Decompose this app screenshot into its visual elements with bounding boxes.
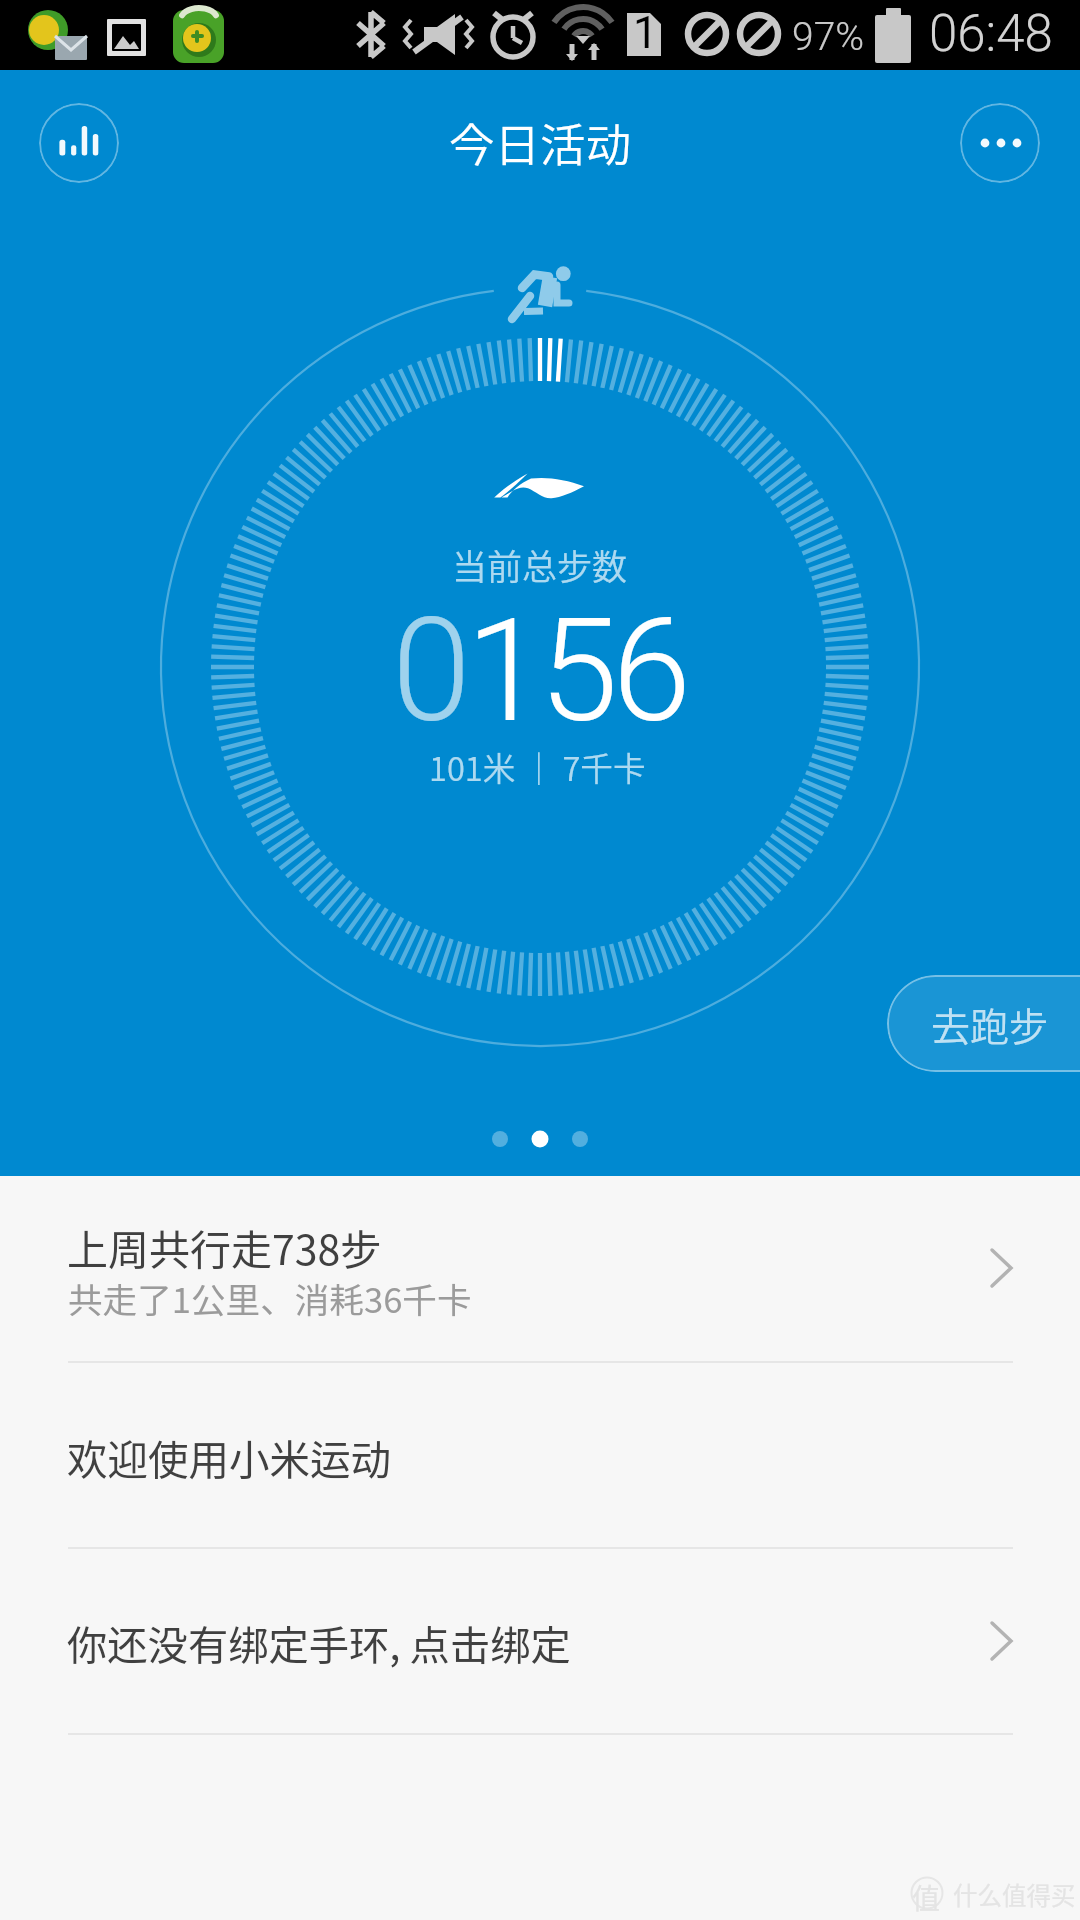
staticText: 156	[466, 588, 686, 754]
staticText: 97%	[792, 14, 865, 60]
staticText: 欢迎使用小米运动	[67, 1428, 391, 1487]
staticText: 当前总步数	[452, 539, 628, 590]
button[interactable]: 欢迎使用小米运动	[0, 1363, 1080, 1547]
staticText: 上周共行走738步	[67, 1217, 382, 1276]
staticText: 去跑步	[931, 996, 1049, 1052]
button[interactable]: 去跑步	[887, 975, 1080, 1072]
staticText: 101米 ｜ 7千卡	[429, 743, 646, 790]
button[interactable]: 你还没有绑定手环, 点击绑定	[0, 1549, 1080, 1733]
staticText: 值	[912, 1877, 941, 1918]
staticText: 0	[392, 588, 466, 754]
staticText: 1	[633, 7, 658, 59]
staticText: 你还没有绑定手环, 点击绑定	[67, 1613, 571, 1671]
staticText: 什么值得买	[953, 1877, 1076, 1912]
button[interactable]: Statistics	[39, 103, 119, 183]
staticText: 今日活动	[449, 109, 632, 175]
staticText: 06:48	[929, 4, 1053, 64]
button[interactable]: More options	[960, 103, 1040, 183]
button[interactable]: 上周共行走738步	[0, 1176, 1080, 1361]
staticText: 共走了1公里、消耗36千卡	[68, 1273, 472, 1323]
